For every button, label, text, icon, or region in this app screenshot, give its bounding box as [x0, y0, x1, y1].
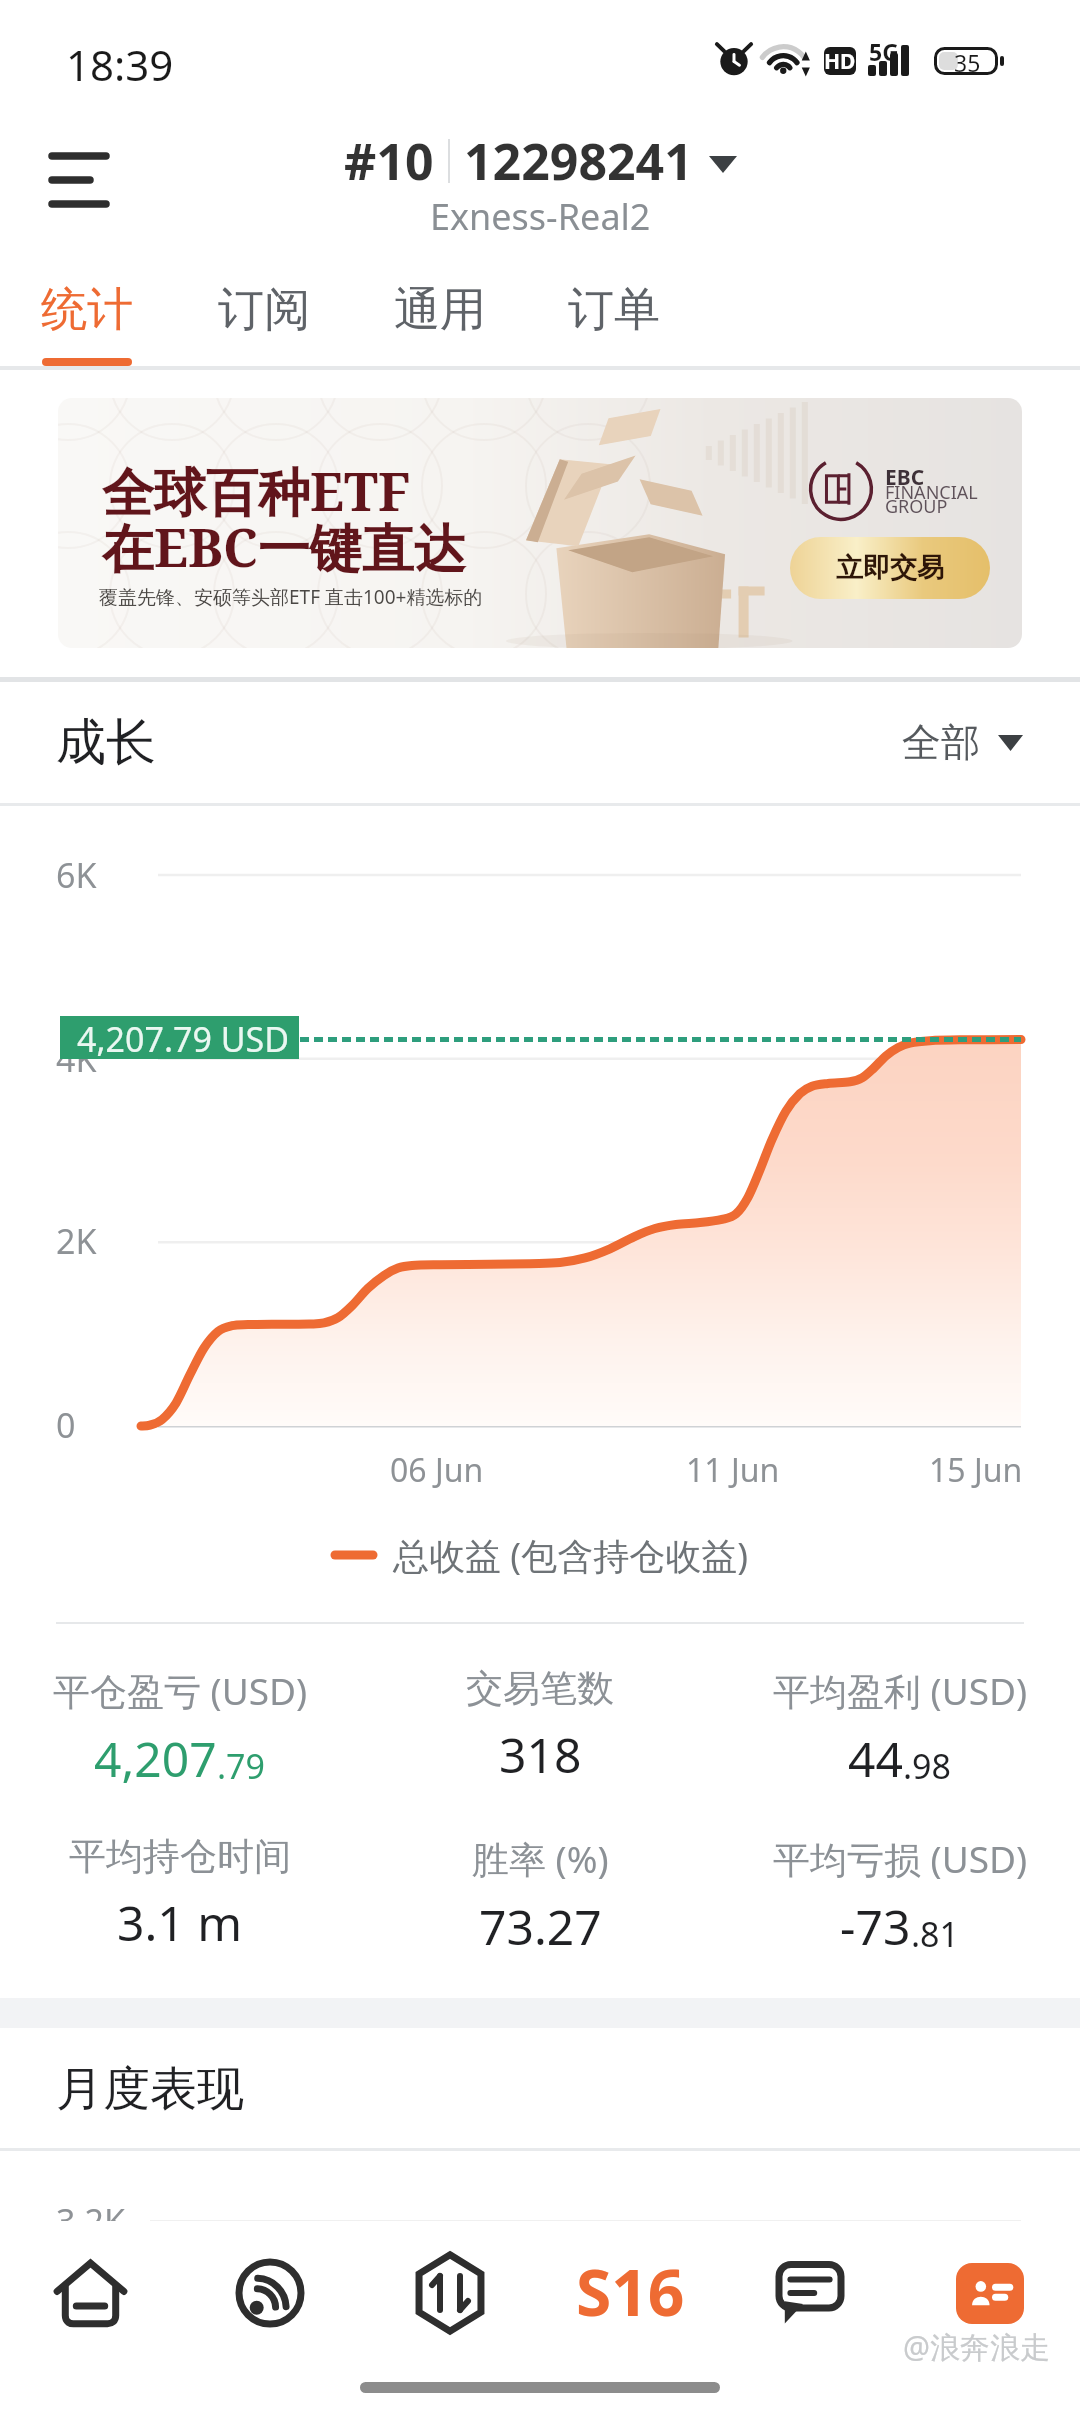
staticText: 11 Jun	[686, 1448, 780, 1492]
staticText: 3.1 m	[117, 1890, 243, 1955]
staticText: HD	[824, 47, 856, 75]
staticText: 318	[499, 1722, 582, 1787]
staticText: 0	[56, 1402, 76, 1448]
staticText: 06 Jun	[390, 1448, 484, 1492]
button[interactable]: 立即交易	[790, 537, 990, 599]
staticText: 5G	[869, 36, 899, 67]
staticText: 12298241	[464, 127, 693, 195]
button[interactable]: 全球百种ETF	[58, 398, 1022, 648]
staticText: 6K	[56, 852, 97, 898]
staticText: .98	[903, 1743, 952, 1789]
staticText: FINANCIAL	[885, 480, 978, 505]
staticText: 平均持仓时间	[69, 1833, 291, 1880]
button[interactable]: Signals	[180, 2221, 360, 2365]
staticText: 在EBC一键直达	[102, 511, 466, 582]
staticText: .79	[217, 1743, 266, 1789]
staticText: 覆盖先锋、安硕等头部ETF 直击100+精选标的	[99, 584, 483, 610]
button[interactable]: Profile	[900, 2221, 1080, 2365]
staticText: 统计	[41, 281, 133, 339]
staticText: -73	[840, 1894, 911, 1959]
button[interactable]: 统计	[0, 260, 175, 366]
staticText: 44	[848, 1726, 903, 1791]
staticText: 3.2K	[56, 2198, 126, 2244]
staticText: EBC	[885, 463, 925, 492]
staticText: 4,207.79 USD	[77, 1016, 290, 1059]
button[interactable]: Accounts	[540, 2221, 720, 2365]
staticText: 胜率 (%)	[472, 1833, 609, 1884]
staticText: 2K	[56, 1218, 97, 1264]
button[interactable]: Trade	[360, 2221, 540, 2365]
button[interactable]: Messages	[720, 2221, 900, 2365]
staticText: 18:39	[66, 36, 174, 93]
staticText: 35	[954, 47, 981, 75]
staticText: 通用	[394, 281, 486, 339]
staticText: 4,207	[94, 1726, 217, 1791]
staticText: 15 Jun	[929, 1448, 1023, 1492]
staticText: 立即交易	[836, 551, 944, 585]
staticText: GROUP	[885, 494, 948, 519]
button[interactable]: 订阅	[176, 260, 352, 366]
staticText: S16	[576, 2248, 685, 2335]
button[interactable]: Menu	[29, 130, 129, 230]
staticText: 成长	[56, 711, 156, 774]
staticText: 总收益 (包含持仓收益)	[393, 1531, 748, 1580]
button[interactable]: 通用	[352, 260, 528, 366]
staticText: 平均亏损 (USD)	[773, 1833, 1028, 1884]
staticText: 73.27	[479, 1894, 602, 1959]
staticText: 订单	[568, 281, 660, 339]
staticText: 平均盈利 (USD)	[773, 1665, 1028, 1716]
staticText: 订阅	[218, 281, 310, 339]
staticText: .81	[911, 1911, 960, 1957]
staticText: #10	[344, 127, 434, 195]
staticText: 平仓盈亏 (USD)	[53, 1665, 308, 1716]
staticText: @浪奔浪走	[903, 2326, 1050, 2367]
staticText: 交易笔数	[466, 1665, 614, 1712]
staticText: 全球百种ETF	[102, 455, 411, 526]
button[interactable]: 全部	[902, 718, 1023, 767]
staticText: 4K	[56, 1036, 97, 1082]
button[interactable]: #10	[0, 110, 1080, 260]
staticText: Exness-Real2	[430, 192, 651, 241]
button[interactable]: Home	[0, 2221, 180, 2365]
staticText: 月度表现	[56, 2060, 244, 2119]
staticText: 全部	[902, 718, 980, 767]
button[interactable]: 订单	[526, 260, 702, 366]
